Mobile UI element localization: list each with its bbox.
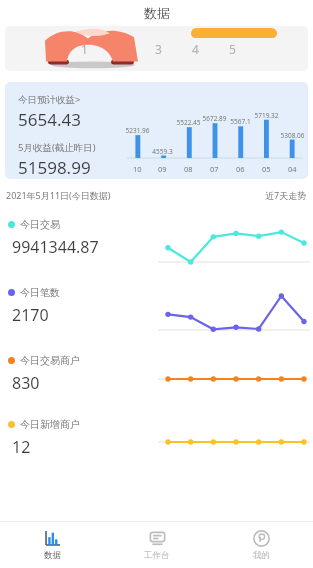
staticText: 04 [288,164,297,174]
staticText: 2170 [12,304,49,326]
staticText: 06 [236,164,245,174]
staticText: 近7天走势 [265,189,307,201]
button[interactable]: 工作台 [105,522,209,568]
staticText: 今日交易 [20,218,60,231]
staticText: 1 [81,41,88,57]
staticText: 5719.32 [254,111,279,120]
staticText: 10 [133,164,142,174]
staticText: 12 [12,436,31,458]
staticText: 工作台 [144,550,170,561]
staticText: 数据 [44,550,61,561]
staticText: 9941344.87 [12,236,99,258]
staticText: 09 [158,164,167,174]
button[interactable]: Banner [5,26,308,71]
staticText: 今日新增商户 [20,418,80,431]
staticText: 05 [262,164,271,174]
staticText: 830 [12,372,40,394]
staticText: 5 [229,41,236,57]
staticText: 3 [155,41,162,57]
button[interactable]: 今日交易商户 [0,349,313,413]
staticText: 5654.43 [18,108,81,131]
staticText: 今日预计收益> [18,93,81,106]
staticText: 4 [192,41,199,57]
staticText: 5231.96 [125,126,150,135]
button[interactable]: 今日预计收益> [5,82,308,179]
staticText: 5672.89 [202,114,227,123]
staticText: 今日交易商户 [20,354,80,367]
staticText: 我的 [253,550,270,561]
staticText: 07 [210,164,219,174]
staticText: 今日笔数 [20,286,60,299]
staticText: 数据 [144,5,170,21]
staticText: 08 [184,164,193,174]
staticText: 5567.1 [230,117,251,126]
staticText: 4559.3 [152,147,173,156]
button[interactable]: 今日交易 [0,213,313,281]
staticText: 5月收益(截止昨日) [18,141,96,154]
button[interactable]: 今日新增商户 [0,413,313,475]
staticText: 5308.06 [280,131,305,140]
button[interactable]: 今日笔数 [0,281,313,349]
staticText: 51598.99 [18,156,91,179]
button[interactable]: 我的 [209,522,313,568]
staticText: 5522.45 [176,118,201,127]
button[interactable]: 数据 [0,522,105,568]
staticText: 2021年5月11日(今日数据) [6,189,111,201]
